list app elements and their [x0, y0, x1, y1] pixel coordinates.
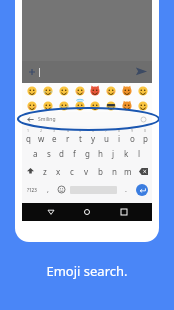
staticText: e [52, 133, 57, 144]
staticText: 0 [144, 128, 147, 133]
button[interactable]: Emoji [25, 84, 38, 97]
button[interactable]: Emoji [25, 99, 38, 112]
staticText: x [56, 166, 61, 177]
staticText: 5 [79, 128, 82, 133]
button[interactable]: 8 [113, 127, 126, 144]
staticText: f [73, 148, 76, 159]
staticText: 6 [92, 128, 95, 133]
staticText: 3 [53, 128, 56, 133]
staticText: 9 [131, 128, 134, 133]
staticText: j [112, 148, 115, 159]
button[interactable]: k [120, 144, 133, 162]
button[interactable]: c [65, 162, 79, 180]
button[interactable]: 3 [48, 127, 61, 144]
other: Back [26, 115, 35, 124]
staticText: 2 [40, 128, 43, 133]
button[interactable]: 0 [139, 127, 152, 144]
staticText: 4 [67, 128, 70, 133]
button[interactable]: , [42, 180, 54, 199]
button[interactable]: Emoji [57, 84, 70, 97]
staticText: Smiling [38, 116, 56, 123]
staticText: y [91, 133, 96, 144]
button[interactable]: Emoji [73, 84, 86, 97]
button[interactable]: Emoji [57, 99, 70, 112]
button[interactable]: x [51, 162, 65, 180]
button[interactable]: n [107, 162, 121, 180]
staticText: d [59, 148, 64, 159]
staticText: h [98, 148, 103, 159]
button[interactable]: 6 [87, 127, 100, 144]
button[interactable]: Shift [22, 162, 38, 180]
button[interactable]: 5 [74, 127, 87, 144]
button[interactable]: Clear search [139, 115, 147, 123]
button[interactable]: s [42, 144, 55, 162]
staticText: v [84, 166, 89, 177]
button[interactable]: Emoji [41, 99, 54, 112]
button[interactable]: 1 [22, 127, 35, 144]
staticText: s [47, 148, 51, 159]
button[interactable]: Home [79, 204, 95, 220]
staticText: 7 [105, 128, 108, 133]
staticText: w [38, 133, 45, 144]
staticText: q [26, 133, 31, 144]
staticText: 1 [27, 128, 30, 133]
button[interactable]: Emoji [120, 84, 133, 97]
button[interactable]: Enter [132, 180, 152, 199]
button[interactable]: b [93, 162, 107, 180]
button[interactable]: Emoji [73, 99, 86, 112]
staticText: . [125, 185, 127, 195]
button[interactable]: l [133, 144, 146, 162]
button[interactable]: Emoji [120, 99, 133, 112]
button[interactable]: v [79, 162, 93, 180]
button[interactable]: ?123 [22, 180, 42, 199]
button[interactable]: g [81, 144, 94, 162]
button[interactable]: Emoji [88, 84, 101, 97]
staticText: z [43, 166, 47, 177]
button[interactable]: Back [22, 112, 152, 126]
button[interactable]: Emoji [104, 84, 117, 97]
button[interactable]: 4 [61, 127, 74, 144]
button[interactable]: z [38, 162, 51, 180]
staticText: l [138, 148, 141, 159]
button[interactable]: m [121, 162, 135, 180]
button[interactable]: Emoji [136, 84, 149, 97]
button[interactable]: f [68, 144, 81, 162]
staticText: u [104, 133, 109, 144]
staticText: c [70, 166, 74, 177]
button[interactable]: 2 [35, 127, 48, 144]
staticText: n [112, 166, 117, 177]
button[interactable]: . [119, 180, 132, 199]
button[interactable]: Back [43, 204, 59, 220]
button[interactable]: Backspace [135, 162, 152, 180]
button[interactable]: Emoji keyboard [54, 180, 68, 199]
staticText: , [47, 185, 49, 195]
staticText: i [118, 133, 121, 144]
staticText: 8 [118, 128, 121, 133]
button[interactable]: Emoji [88, 99, 101, 112]
button[interactable]: a [28, 144, 42, 162]
staticText: k [124, 148, 129, 159]
staticText: a [33, 148, 38, 159]
button[interactable]: Send SMS [133, 64, 149, 80]
button[interactable]: Recent apps [116, 204, 132, 220]
staticText: t [79, 133, 82, 144]
button[interactable]: Emoji [136, 99, 149, 112]
button[interactable]: Add attachment [25, 65, 39, 79]
button[interactable]: Emoji [104, 99, 117, 112]
staticText: ?123 [27, 187, 37, 193]
staticText: p [143, 133, 148, 144]
button[interactable]: d [55, 144, 68, 162]
button[interactable]: 9 [126, 127, 139, 144]
button[interactable]: h [94, 144, 107, 162]
staticText: r [66, 133, 70, 144]
staticText: b [98, 166, 103, 177]
staticText: o [130, 133, 135, 144]
staticText: Emoji search. [0, 262, 174, 280]
button[interactable]: j [107, 144, 120, 162]
staticText: m [124, 166, 132, 177]
staticText: g [85, 148, 90, 159]
button[interactable]: Emoji [41, 84, 54, 97]
button[interactable]: 7 [100, 127, 113, 144]
